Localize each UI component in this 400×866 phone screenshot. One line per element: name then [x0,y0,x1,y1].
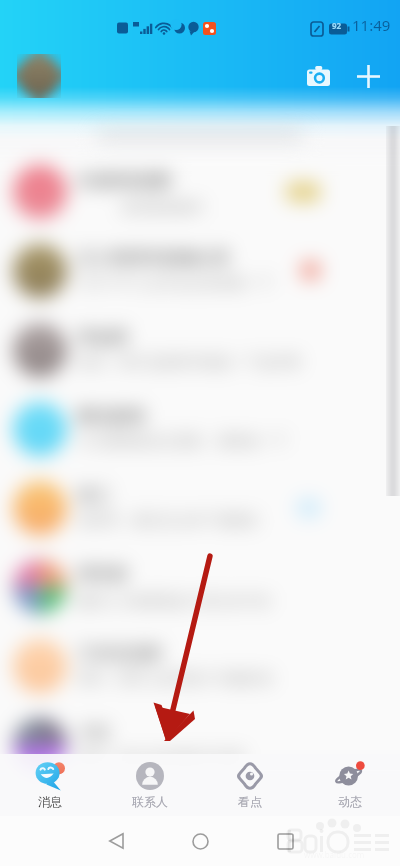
staticText: 92 [332,20,342,31]
button[interactable]: 张三 [0,468,400,547]
staticText: 收到，我马上处理这个问题好的 [77,670,273,688]
staticText: QQ邮箱提醒 [77,168,172,191]
staticText: 张三 [77,485,111,506]
button[interactable]: Recents [255,816,315,866]
staticText: 工作交流群 [77,643,162,664]
button[interactable]: 工作交流群 [0,626,400,705]
staticText: 同学群 [77,564,128,585]
button[interactable]: 看点 [200,754,300,816]
button[interactable]: QQ邮箱提醒 [0,152,400,231]
button[interactable]: 小红 [0,705,400,784]
button[interactable]: 动态 [300,754,400,816]
staticText: 消息 [38,794,62,809]
staticText: 联系人 [132,794,168,809]
staticText: 今日要闻推送已更新，请查收一下 [77,433,287,451]
staticText: 小红 [77,722,111,743]
button[interactable]: 李老师 [0,310,400,389]
button[interactable]: 腾讯新闻 [0,389,400,468]
staticText: 看点 [238,794,262,809]
button[interactable]: Add [346,54,390,98]
staticText: 周末一起出去玩吗好不好呀 [77,749,245,767]
staticText: 邮件 [292,185,314,199]
button[interactable]: Home [170,816,230,866]
button[interactable]: 消息 [0,754,100,816]
button[interactable]: Camera [296,54,340,98]
button[interactable]: 联系人 [100,754,200,816]
staticText: 王小明同学群聊分享 [77,248,230,269]
staticText: 11:49 [352,15,391,35]
staticText: 动态 [338,794,362,809]
staticText: www.baidu.com [304,849,365,860]
button[interactable]: Back [86,816,146,866]
button[interactable]: 同学群 [0,547,400,626]
staticText: 李老师 [77,327,128,348]
staticText: 腾讯新闻 [77,406,145,427]
button[interactable]: 王小明同学群聊分享 [0,231,400,310]
button[interactable]: Profile [17,54,61,98]
staticText: [图片] 大家看看这个照片好不好 [77,591,272,610]
staticText: 您有新的邮件 [77,197,205,216]
staticText: 今天下午三点开会记得来看一下 [77,275,273,293]
